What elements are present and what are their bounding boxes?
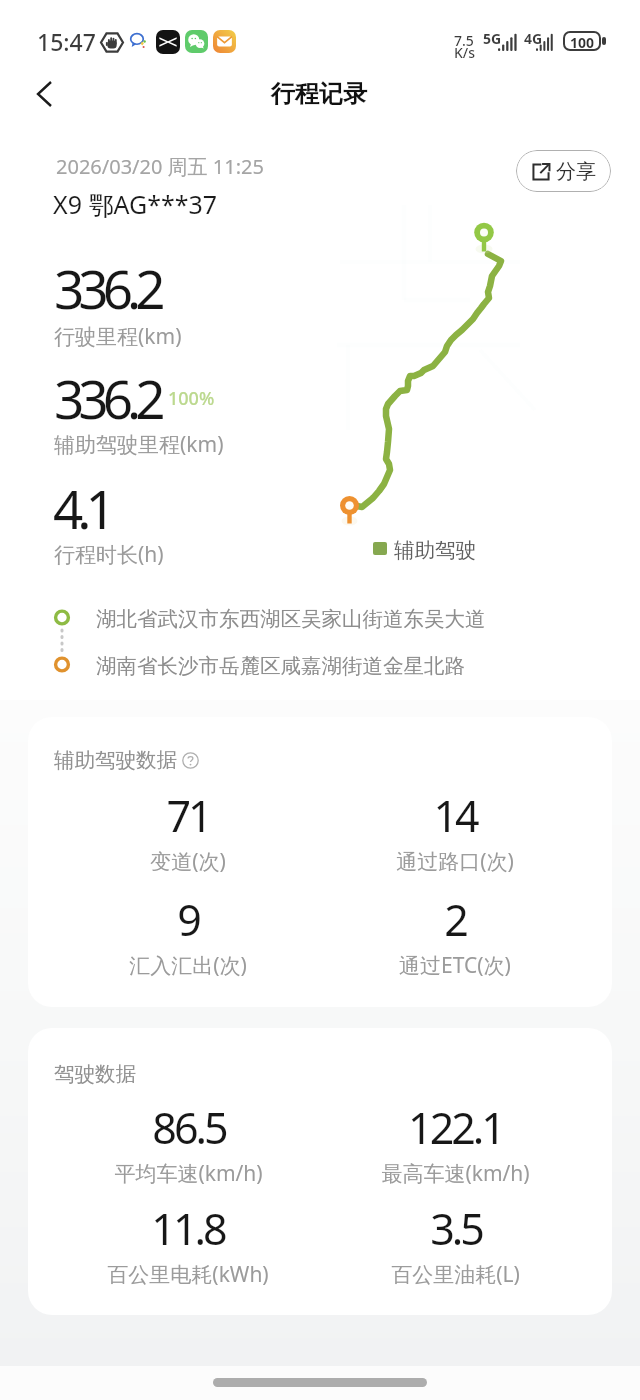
staticText: 行程记录 [271, 79, 367, 109]
button[interactable]: 122.1 [325, 1098, 585, 1188]
staticText: 3.5 [430, 1199, 482, 1258]
staticText: 122.1 [408, 1098, 503, 1157]
staticText: 4G [524, 29, 543, 48]
button[interactable]: Back [22, 72, 66, 116]
staticText: X9 鄂AG***37 [53, 187, 218, 221]
staticText: 汇入汇出(次) [129, 951, 247, 980]
staticText: 5G [483, 29, 502, 48]
staticText: 通过ETC(次) [399, 951, 511, 980]
button[interactable]: 14 [325, 786, 585, 876]
button[interactable]: 3.5 [325, 1199, 585, 1289]
staticText: 辅助驾驶 [394, 537, 476, 563]
staticText: 变道(次) [150, 847, 226, 876]
button[interactable]: 湖南省长沙市岳麓区咸嘉湖街道金星北路 [96, 653, 465, 679]
staticText: 11.8 [151, 1199, 225, 1258]
button[interactable]: 71 [58, 786, 318, 876]
staticText: 4.1 [53, 472, 110, 544]
staticText: 2026/03/20 周五 11:25 [56, 153, 264, 180]
staticText: 行程时长(h) [54, 540, 164, 569]
staticText: 湖南省长沙市岳麓区咸嘉湖街道金星北路 [96, 653, 465, 679]
staticText: 平均车速(km/h) [114, 1159, 263, 1188]
staticText: 辅助驾驶里程(km) [54, 430, 224, 459]
staticText: 100 [570, 33, 595, 49]
staticText: 86.5 [152, 1098, 226, 1157]
staticText: 14 [433, 786, 477, 845]
staticText: K/s [454, 43, 476, 62]
staticText: 2 [444, 890, 466, 949]
staticText: 辅助驾驶数据 [54, 747, 177, 773]
staticText: 15:47 [37, 26, 96, 57]
button[interactable]: 86.5 [58, 1098, 318, 1188]
staticText: 驾驶数据 [54, 1061, 136, 1087]
staticText: 通过路口(次) [396, 847, 514, 876]
button[interactable]: 湖北省武汉市东西湖区吴家山街道东吴大道 [96, 606, 486, 632]
staticText: 9 [177, 890, 199, 949]
staticText: 百公里油耗(L) [391, 1260, 520, 1289]
staticText: 最高车速(km/h) [381, 1159, 530, 1188]
staticText: 湖北省武汉市东西湖区吴家山街道东吴大道 [96, 606, 486, 632]
button[interactable]: 2 [325, 890, 585, 980]
staticText: 336.2 [54, 252, 160, 324]
button[interactable]: 11.8 [58, 1199, 318, 1289]
staticText: 336.2 [54, 362, 160, 434]
staticText: 71 [166, 786, 210, 845]
staticText: 100% [168, 386, 215, 411]
staticText: 百公里电耗(kWh) [107, 1260, 269, 1289]
button[interactable]: 9 [58, 890, 318, 980]
button[interactable]: 分享 [516, 150, 611, 192]
staticText: 行驶里程(km) [54, 322, 182, 351]
staticText: 分享 [556, 159, 596, 184]
staticText: 7.5 [454, 31, 474, 50]
